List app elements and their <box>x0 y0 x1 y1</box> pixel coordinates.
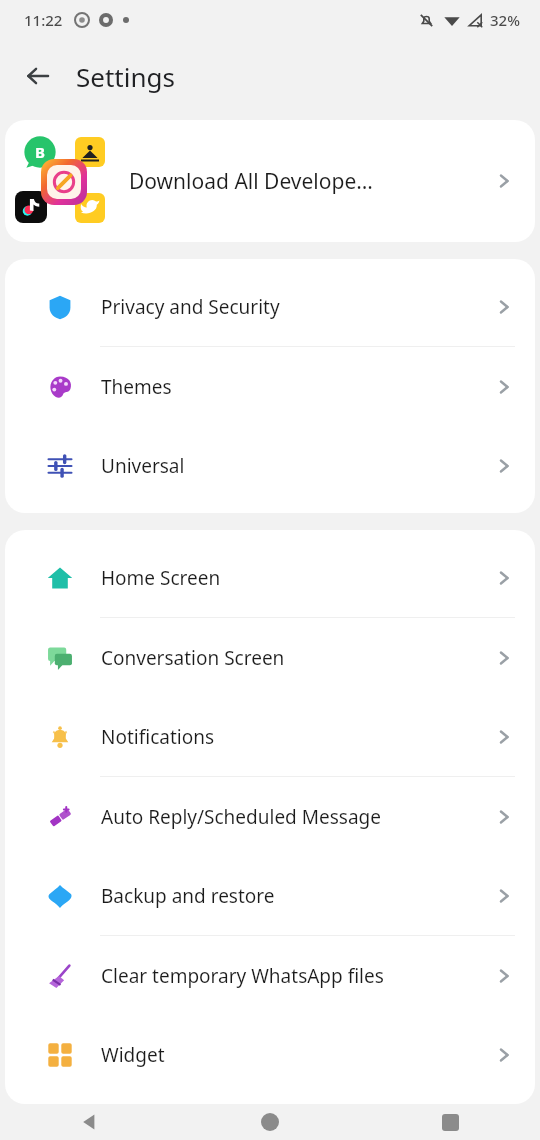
staticText: Widget <box>101 1042 493 1068</box>
staticText: Universal <box>101 453 493 479</box>
button[interactable]: Themes <box>5 347 535 426</box>
button[interactable]: Notifications <box>5 697 535 776</box>
staticText: Privacy and Security <box>101 294 493 320</box>
staticText: Themes <box>101 374 493 400</box>
staticText: Home Screen <box>101 565 493 591</box>
button[interactable]: Home <box>180 1104 360 1140</box>
button[interactable]: Widget <box>5 1015 535 1094</box>
button[interactable]: Back <box>0 1104 180 1140</box>
staticText: Download All Develope… <box>129 167 493 196</box>
button[interactable]: Back <box>14 52 62 100</box>
staticText: 11:22 <box>24 10 63 30</box>
staticText: Clear temporary WhatsApp files <box>101 963 493 989</box>
staticText: Conversation Screen <box>101 645 493 671</box>
button[interactable]: Home Screen <box>5 538 535 617</box>
staticText: Auto Reply/Scheduled Message <box>101 804 493 830</box>
button[interactable]: Conversation Screen <box>5 618 535 697</box>
staticText: Notifications <box>101 724 493 750</box>
button[interactable]: Privacy and Security <box>5 267 535 346</box>
button[interactable]: Universal <box>5 426 535 505</box>
button[interactable]: Backup and restore <box>5 856 535 935</box>
staticText: B <box>35 142 45 162</box>
button[interactable]: Recent apps <box>360 1104 540 1140</box>
button[interactable]: Clear temporary WhatsApp files <box>5 936 535 1015</box>
staticText: Backup and restore <box>101 883 493 909</box>
button[interactable]: Auto Reply/Scheduled Message <box>5 777 535 856</box>
button[interactable]: B <box>5 120 535 242</box>
staticText: Settings <box>76 59 175 94</box>
staticText: 32% <box>490 10 520 30</box>
